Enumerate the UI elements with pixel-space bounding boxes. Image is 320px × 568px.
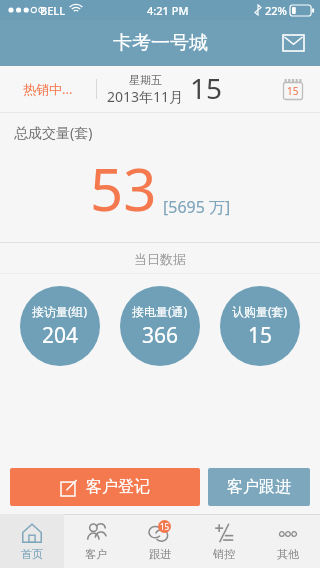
- staticText: 首页: [21, 547, 43, 561]
- staticText: 204: [42, 321, 79, 350]
- staticText: 总成交量(套): [14, 123, 93, 142]
- staticText: 热销中...: [23, 80, 73, 98]
- staticText: 2013年11月: [107, 87, 184, 106]
- staticText: 销控: [213, 547, 235, 561]
- staticText: [5695 万]: [163, 196, 231, 218]
- staticText: 客户登记: [86, 477, 150, 497]
- staticText: 星期五: [129, 73, 162, 87]
- button[interactable]: 接电量(通): [120, 286, 200, 366]
- button[interactable]: 认购量(套): [220, 286, 300, 366]
- staticText: 当日数据: [0, 251, 320, 267]
- button[interactable]: Calendar: [278, 74, 308, 104]
- button[interactable]: 首页: [0, 514, 64, 568]
- staticText: 客户跟进: [227, 477, 291, 497]
- staticText: 15: [190, 69, 223, 107]
- button[interactable]: 其他: [256, 514, 320, 568]
- button[interactable]: 热销中...: [0, 66, 96, 112]
- staticText: 53: [90, 149, 157, 228]
- staticText: 接访量(组): [32, 303, 88, 319]
- staticText: 认购量(套): [232, 303, 288, 319]
- staticText: BELL: [40, 3, 66, 18]
- staticText: 其他: [277, 547, 299, 561]
- staticText: 15: [287, 84, 299, 98]
- staticText: 366: [142, 321, 179, 350]
- button[interactable]: 接访量(组): [20, 286, 100, 366]
- button[interactable]: 客户登记: [10, 468, 200, 506]
- button[interactable]: 销控: [192, 514, 256, 568]
- button[interactable]: 客户: [64, 514, 128, 568]
- staticText: 接电量(通): [132, 303, 188, 319]
- button[interactable]: Messages: [276, 26, 310, 60]
- staticText: 4:21 PM: [147, 3, 189, 18]
- staticText: 15: [248, 321, 273, 350]
- staticText: 15: [160, 521, 170, 532]
- staticText: 卡考一号城: [113, 31, 208, 55]
- button[interactable]: 客户跟进: [208, 468, 310, 506]
- button[interactable]: 15: [128, 514, 192, 568]
- staticText: 客户: [85, 547, 107, 561]
- staticText: 22%: [265, 3, 287, 18]
- staticText: 跟进: [149, 547, 171, 561]
